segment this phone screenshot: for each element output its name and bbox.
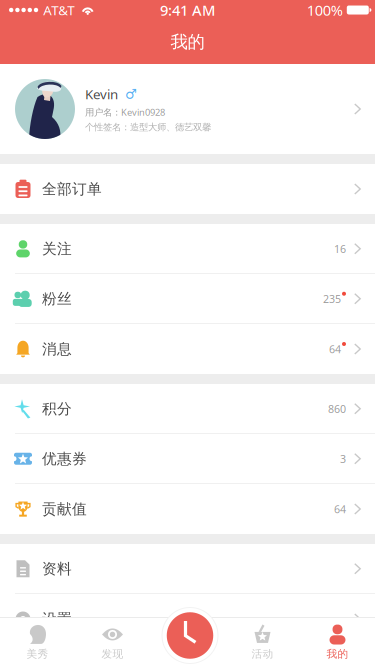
button[interactable]: 优惠券	[0, 434, 375, 484]
button[interactable]: 积分	[0, 384, 375, 434]
staticText: 个性签名：造型大师、德艺双馨	[85, 121, 211, 133]
staticText: 粉丝	[42, 290, 72, 308]
staticText: 美秀	[26, 647, 48, 660]
button[interactable]: 资料	[0, 544, 375, 594]
staticText: 发现	[101, 647, 123, 660]
staticText: 优惠券	[42, 450, 87, 468]
staticText: 关注	[42, 240, 72, 258]
staticText: 用户名：Kevin0928	[85, 106, 165, 118]
button[interactable]: 贡献值	[0, 484, 375, 534]
staticText: 100%	[307, 0, 343, 20]
staticText: 活动	[251, 647, 273, 660]
button[interactable]: 美秀	[0, 617, 75, 667]
button[interactable]: Record	[161, 606, 219, 664]
staticText: 860	[328, 402, 346, 416]
button[interactable]: 发现	[75, 617, 150, 667]
button[interactable]: Kevin	[0, 64, 375, 154]
staticText: 3	[340, 452, 346, 466]
button[interactable]: 关注	[0, 224, 375, 274]
staticText: 64	[329, 342, 341, 356]
staticText: 64	[334, 502, 346, 516]
staticText: 16	[334, 242, 346, 256]
staticText: 我的	[170, 31, 204, 53]
staticText: 贡献值	[42, 500, 87, 518]
staticText: 消息	[42, 340, 72, 358]
staticText: 资料	[42, 560, 72, 578]
staticText: 设置	[42, 610, 72, 628]
staticText: 全部订单	[42, 180, 102, 198]
button[interactable]: 消息	[0, 324, 375, 374]
button[interactable]: 活动	[225, 617, 300, 667]
staticText: 我的	[326, 647, 348, 660]
button[interactable]: 粉丝	[0, 274, 375, 324]
staticText: 9:41 AM	[160, 0, 215, 20]
staticText: 积分	[42, 400, 72, 418]
staticText: AT&T	[43, 1, 74, 19]
button[interactable]: 设置	[0, 594, 375, 644]
button[interactable]: 全部订单	[0, 164, 375, 214]
staticText: 235	[323, 292, 341, 306]
button[interactable]: 我的	[300, 617, 375, 667]
staticText: Kevin	[85, 85, 118, 103]
staticText: ♂	[125, 86, 137, 102]
